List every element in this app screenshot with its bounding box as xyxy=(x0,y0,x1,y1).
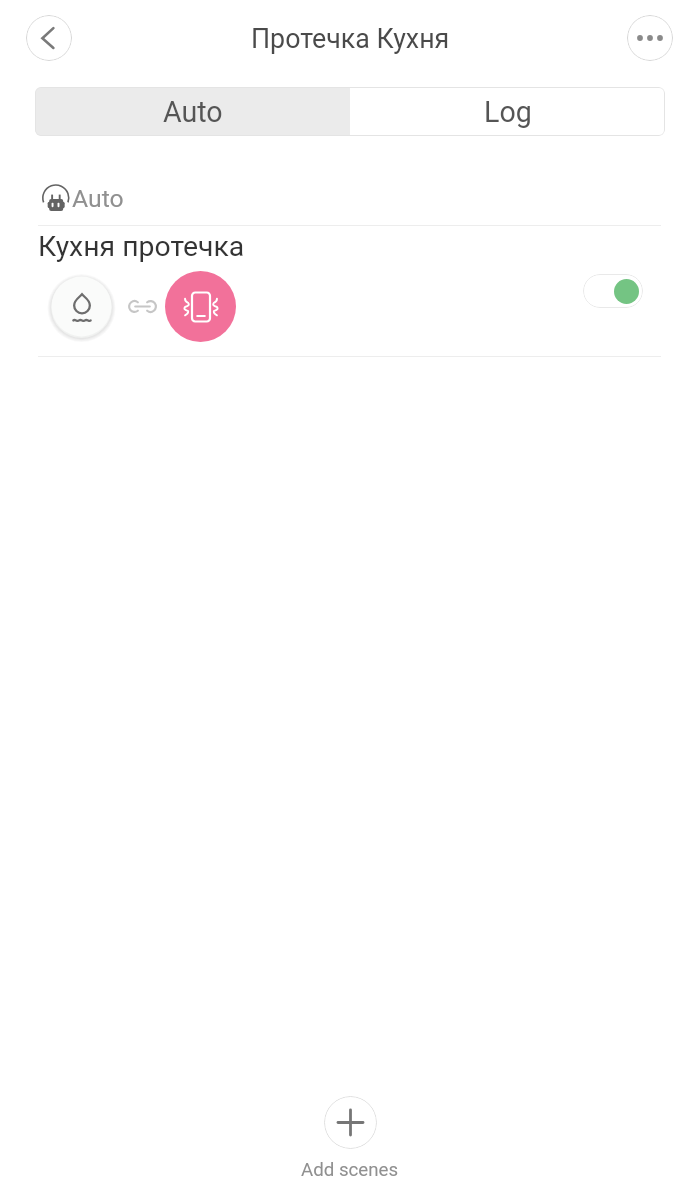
staticText: Log xyxy=(484,95,532,129)
button[interactable]: Back xyxy=(26,15,72,61)
staticText: Add scenes xyxy=(301,1159,399,1181)
button[interactable]: Toggle scene xyxy=(583,274,643,308)
staticText: Auto xyxy=(72,184,124,213)
button[interactable]: Auto xyxy=(35,87,350,136)
staticText: Протечка Кухня xyxy=(251,23,450,54)
button[interactable]: Log xyxy=(350,87,665,136)
button[interactable]: Кухня протечка xyxy=(0,226,700,357)
button[interactable]: Add scenes xyxy=(280,1090,420,1181)
staticText: Кухня протечка xyxy=(38,230,245,263)
staticText: Auto xyxy=(163,95,223,129)
button[interactable]: More options xyxy=(627,15,673,61)
